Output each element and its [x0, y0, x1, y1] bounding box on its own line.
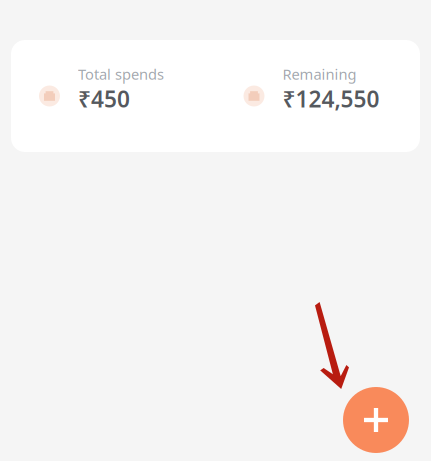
button[interactable]: Add [343, 387, 409, 453]
staticText: ₹124,550 [282, 84, 379, 114]
staticText: Remaining [282, 64, 356, 84]
staticText: Total spends [78, 64, 164, 84]
staticText: ₹450 [78, 84, 130, 114]
